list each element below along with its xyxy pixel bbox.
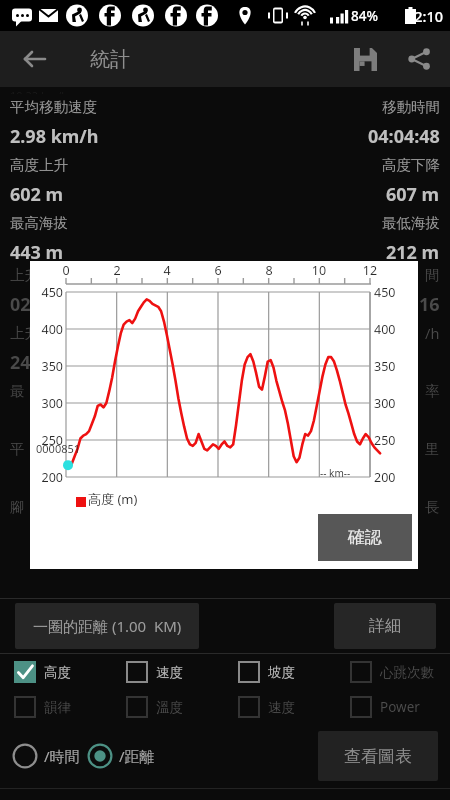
staticText: 速度: [268, 699, 295, 716]
staticText: 84%: [351, 7, 378, 25]
staticText: 8: [257, 262, 281, 279]
staticText: 6: [206, 262, 230, 279]
button[interactable]: 坡度: [236, 654, 336, 690]
button[interactable]: /距離: [85, 737, 157, 775]
staticText: 350: [30, 358, 63, 375]
staticText: 率: [425, 382, 440, 400]
button[interactable]: Share: [396, 36, 442, 82]
staticText: 12:10: [406, 6, 444, 26]
button[interactable]: 溫度: [124, 690, 224, 724]
button[interactable]: 速度: [124, 654, 224, 690]
staticText: 443 m: [10, 240, 64, 265]
button[interactable]: 高度: [12, 654, 112, 690]
staticText: 250: [30, 432, 63, 449]
button[interactable]: /時間: [10, 737, 82, 775]
staticText: 最高海拔: [10, 214, 68, 232]
staticText: /距離: [119, 746, 155, 766]
staticText: 607 m: [386, 182, 440, 207]
staticText: 上升: [10, 324, 39, 342]
staticText: 高度上升: [10, 156, 68, 174]
staticText: 04:04:48: [368, 124, 440, 149]
button[interactable]: Back: [12, 37, 56, 81]
staticText: 24: [10, 350, 31, 375]
button[interactable]: 查看圖表: [318, 731, 438, 781]
staticText: 4: [155, 262, 179, 279]
staticText: 里: [425, 440, 440, 458]
staticText: 高度 (m): [88, 490, 138, 508]
staticText: 10: [307, 262, 331, 279]
staticText: 腳: [10, 498, 25, 516]
staticText: 高度: [44, 664, 71, 681]
button[interactable]: 詳細: [334, 603, 436, 649]
staticText: 2: [105, 262, 129, 279]
staticText: 12: [358, 262, 382, 279]
staticText: 02: [10, 292, 31, 317]
staticText: 250: [374, 432, 396, 449]
staticText: 450: [374, 284, 396, 301]
button[interactable]: 速度: [236, 690, 336, 724]
staticText: 602 m: [10, 182, 64, 207]
staticText: /h: [425, 323, 440, 343]
staticText: 200: [30, 469, 63, 486]
staticText: 最低海拔: [382, 214, 440, 232]
button[interactable]: 心跳次數: [348, 654, 448, 690]
staticText: 一圈的距離 (1.00 KM): [33, 616, 182, 636]
staticText: 上升: [10, 266, 39, 284]
staticText: 間: [425, 266, 440, 284]
staticText: 高度下降: [382, 156, 440, 174]
button[interactable]: Power: [348, 690, 448, 724]
staticText: 韻律: [44, 699, 71, 716]
staticText: 長: [425, 498, 440, 516]
button[interactable]: 韻律: [12, 690, 112, 724]
staticText: 平: [10, 440, 25, 458]
staticText: -- km--: [320, 466, 351, 480]
staticText: 詳細: [369, 616, 401, 636]
staticText: 212 m: [386, 240, 440, 265]
staticText: 0000851: [36, 441, 81, 456]
staticText: 16: [419, 292, 440, 317]
staticText: 平均移動速度: [10, 98, 97, 116]
staticText: 300: [374, 395, 396, 412]
staticText: 300: [30, 395, 63, 412]
staticText: 溫度: [156, 699, 183, 716]
staticText: 確認: [348, 527, 382, 548]
staticText: 心跳次數: [380, 664, 434, 681]
staticText: 400: [374, 321, 396, 338]
staticText: 0: [54, 262, 78, 279]
staticText: 移動時間: [382, 98, 440, 116]
staticText: 450: [30, 284, 63, 301]
staticText: 最: [10, 382, 25, 400]
button[interactable]: Save: [342, 36, 388, 82]
staticText: 400: [30, 321, 63, 338]
staticText: /時間: [44, 746, 80, 766]
staticText: 查看圖表: [344, 746, 412, 767]
staticText: 速度: [156, 664, 183, 681]
staticText: 2.98 km/h: [10, 124, 99, 149]
button[interactable]: 一圈的距離 (1.00 KM): [15, 603, 199, 649]
staticText: 200: [374, 469, 396, 486]
staticText: Power: [380, 698, 420, 716]
staticText: 坡度: [268, 664, 295, 681]
button[interactable]: 確認: [318, 514, 412, 561]
staticText: 統計: [90, 47, 130, 72]
staticText: 350: [374, 358, 396, 375]
